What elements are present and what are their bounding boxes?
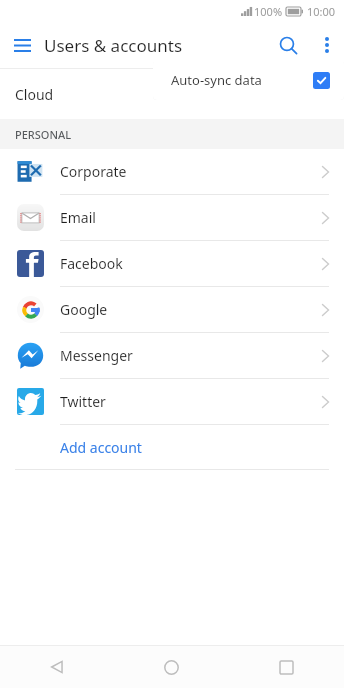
button[interactable]: Facebook [0,241,344,286]
staticText: 100% [254,4,283,19]
staticText: Corporate [60,162,127,181]
button[interactable]: Corporate [0,149,344,194]
button[interactable]: Add account [0,425,344,469]
button[interactable]: Google [0,287,344,332]
button[interactable]: Home [114,646,229,688]
button[interactable]: Search [266,22,310,68]
button[interactable]: Twitter [0,379,344,424]
button[interactable]: Messenger [0,333,344,378]
button[interactable]: Auto-sync data [153,60,344,100]
staticText: Users & accounts [44,34,183,57]
button[interactable]: Cloud [0,69,344,119]
staticText: Facebook [60,254,123,273]
button[interactable]: Recent apps [229,646,344,688]
button[interactable]: Back [0,646,114,688]
staticText: Messenger [60,346,133,365]
staticText: PERSONAL [15,127,72,142]
staticText: Auto-sync data [171,71,262,89]
button[interactable]: More options [310,22,344,68]
staticText: Add account [60,438,142,457]
staticText: Email [60,208,96,227]
staticText: Google [60,300,108,319]
button[interactable]: Email [0,195,344,240]
button[interactable]: Navigation menu [0,22,44,68]
staticText: 10:00 [307,4,336,19]
staticText: Twitter [60,392,106,411]
staticText: Cloud [15,85,54,104]
